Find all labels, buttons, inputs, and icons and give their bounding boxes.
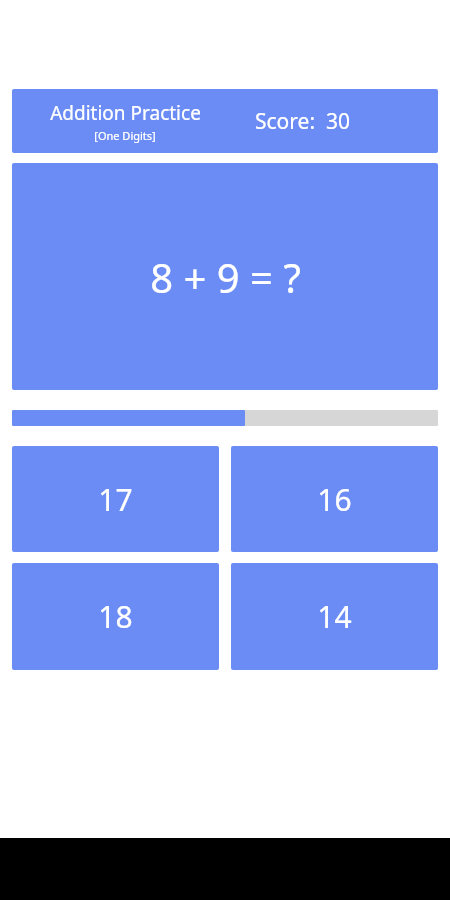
staticText: [One Digits] <box>94 128 156 143</box>
staticText: Score: 30 <box>255 107 405 136</box>
button[interactable]: 14 <box>231 563 438 670</box>
button[interactable]: 17 <box>12 446 219 552</box>
button[interactable]: 16 <box>231 446 438 552</box>
staticText: 18 <box>98 596 133 637</box>
button[interactable]: 18 <box>12 563 219 670</box>
button[interactable]: Addition Practice <box>12 89 438 153</box>
staticText: 14 <box>317 596 352 637</box>
staticText: 16 <box>317 479 352 520</box>
staticText: Addition Practice <box>50 100 201 126</box>
staticText: 8 + 9 = ? <box>150 250 301 304</box>
staticText: 17 <box>98 479 133 520</box>
